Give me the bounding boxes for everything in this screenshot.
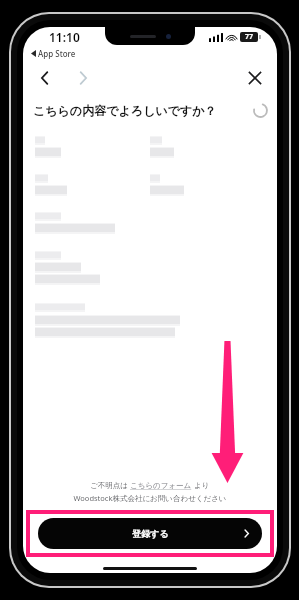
staticText: Woodstock株式会社にお問い合わせください: [73, 493, 227, 503]
staticText: App Store: [38, 48, 76, 59]
staticText: ご不明点は: [90, 480, 130, 490]
button[interactable]: Forward: [71, 66, 95, 90]
button[interactable]: 登録する: [38, 518, 262, 549]
button[interactable]: こちらのフォーム: [130, 481, 192, 490]
staticText: こちらのフォーム: [130, 481, 192, 490]
button[interactable]: Back: [33, 66, 57, 90]
staticText: 登録する: [132, 528, 169, 539]
staticText: 77: [245, 32, 254, 42]
staticText: こちらの内容でよろしいですか？: [33, 103, 217, 118]
staticText: より: [192, 480, 210, 490]
staticText: 11:10: [49, 29, 80, 45]
button[interactable]: Close: [243, 66, 267, 90]
